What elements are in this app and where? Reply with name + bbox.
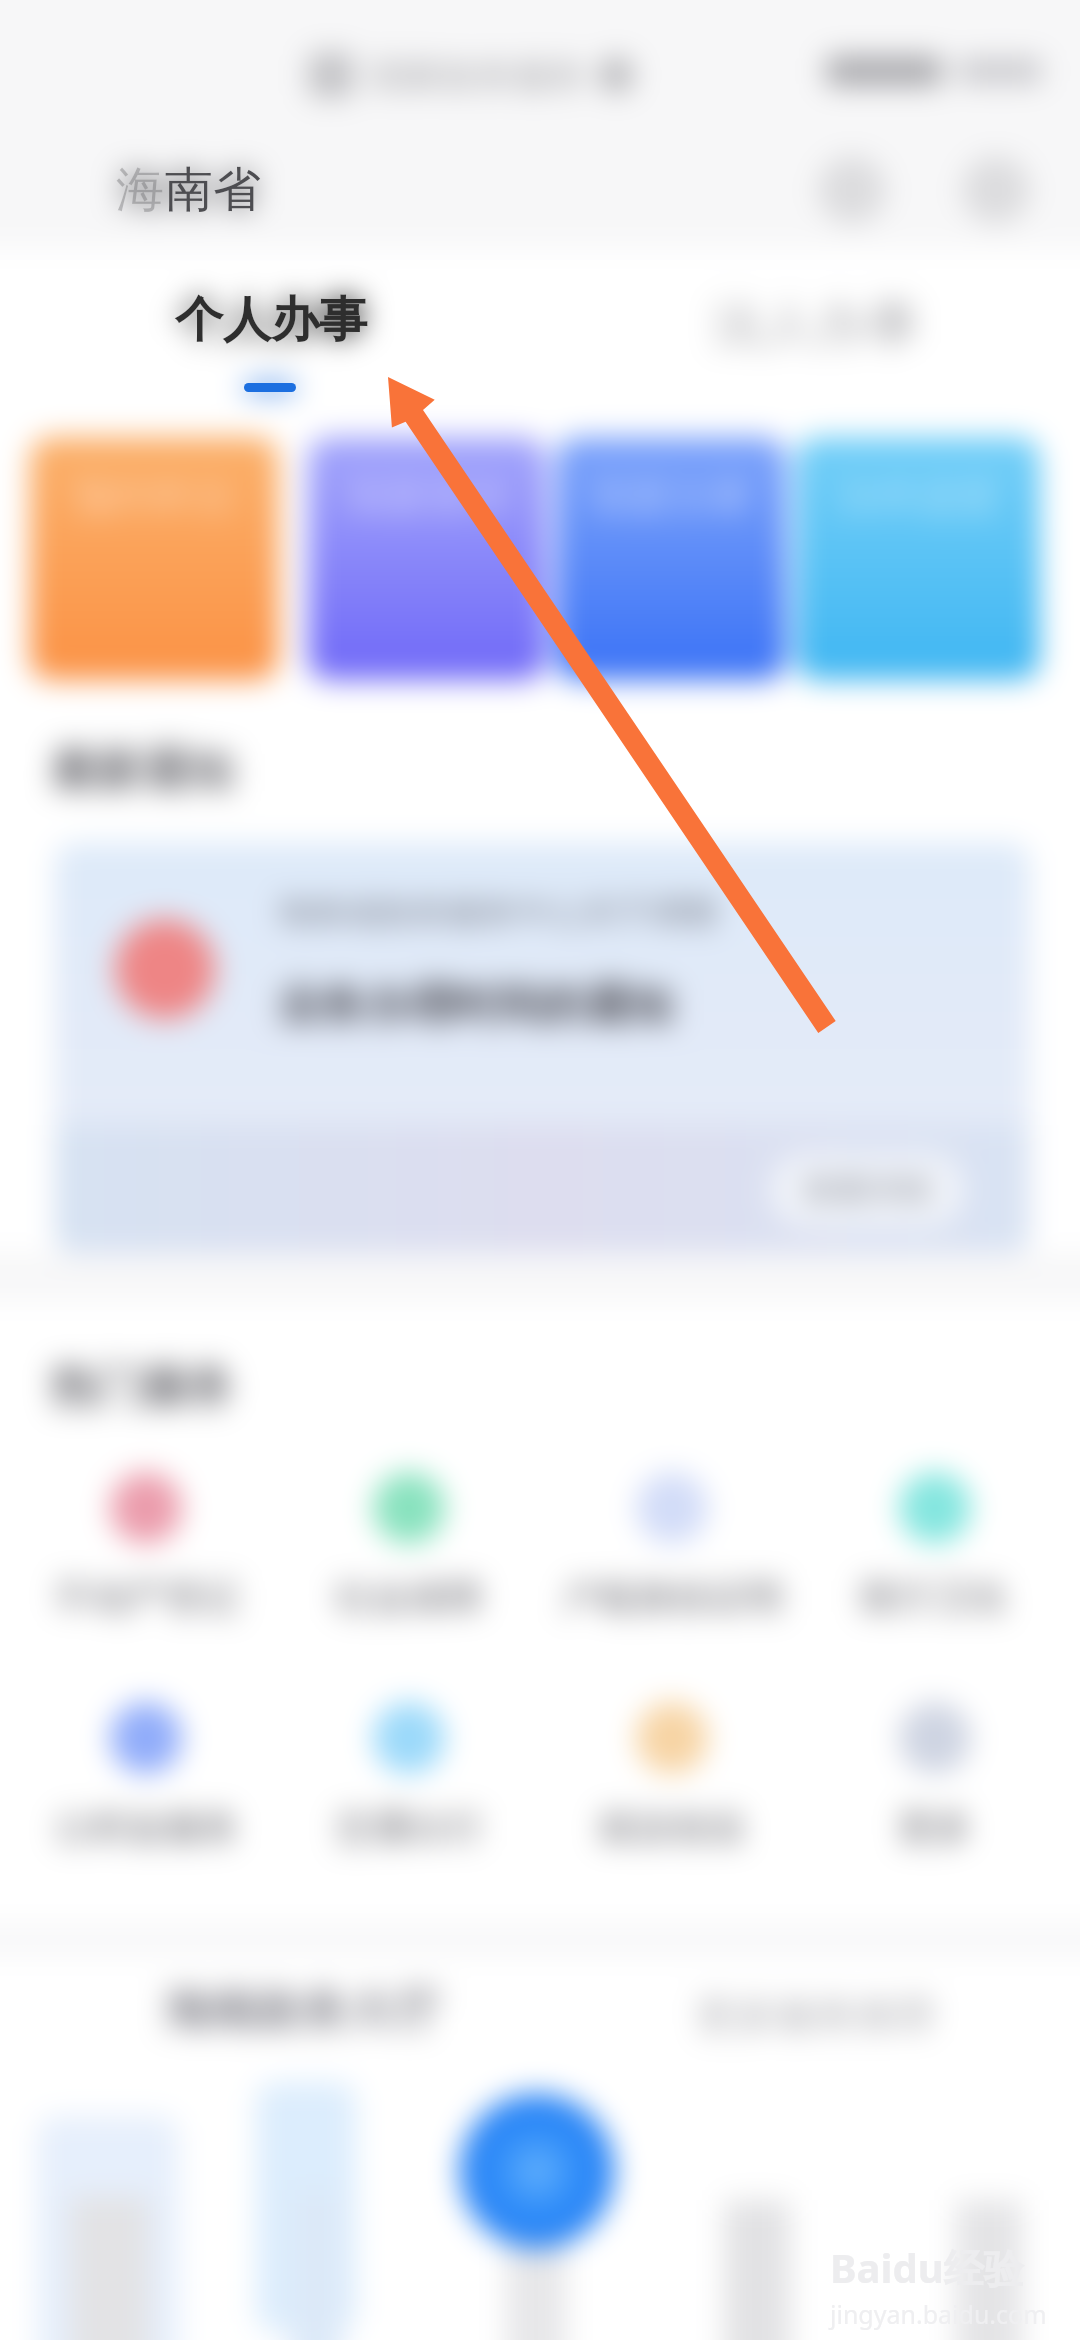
button[interactable]: 交通出行 — [279, 1702, 539, 1851]
staticText: 法人办事 — [712, 292, 920, 358]
button[interactable]: 我要办事 — [556, 437, 786, 680]
button[interactable]: 就业创业 — [542, 1702, 802, 1851]
staticText: 个人办事 — [175, 290, 367, 350]
staticText: 海南省政务服务中心关于调整 — [277, 891, 719, 934]
staticText: 我要查询 — [347, 473, 507, 523]
staticText: 社会保障 — [335, 1574, 483, 1621]
button[interactable]: 办件进度 — [796, 437, 1040, 680]
staticText: 热门服务 — [50, 1358, 234, 1416]
button[interactable]: 法人办事 — [712, 292, 920, 358]
staticText: 办件进度 — [838, 473, 998, 523]
staticText: 更多 — [898, 1804, 972, 1851]
button[interactable]: 南省 — [116, 160, 212, 220]
staticText: 交通出行 — [335, 1804, 483, 1851]
button[interactable] — [37, 2116, 179, 2340]
button[interactable]: 预约申办 — [30, 437, 278, 680]
staticText: 业务办理时间的通知 — [277, 978, 673, 1033]
staticText: 南省 — [165, 160, 261, 220]
staticText: 公积金服务 — [54, 1804, 239, 1851]
staticText: 户籍身份证明 — [561, 1574, 783, 1621]
staticText: 个人办事 — [175, 290, 367, 350]
staticText: 我要办事 — [591, 473, 751, 523]
button[interactable]: 海南省 — [116, 160, 260, 220]
staticText: 就业创业 — [598, 1804, 746, 1851]
staticText: 预约申办 — [74, 473, 234, 523]
staticText: 海南政务大厅 — [164, 1982, 440, 2040]
staticText: jingyan.baidu.com — [830, 2297, 1047, 2331]
button[interactable] — [256, 2082, 356, 2332]
staticText: 医疗卫生 — [861, 1574, 1009, 1621]
staticText: 查看详情 — [803, 1170, 931, 1210]
button[interactable]: 户籍身份证明 — [542, 1472, 802, 1621]
staticText: 国家政务服务 — [370, 53, 586, 98]
button[interactable]: 社会保障 — [279, 1472, 539, 1621]
staticText: 不动产登记 — [54, 1574, 239, 1621]
button[interactable]: Scan — [962, 156, 1030, 224]
button[interactable]: 个人办事 — [175, 290, 367, 350]
button[interactable]: 我要查询 — [308, 437, 546, 680]
staticText: 最新通知 — [50, 742, 234, 800]
button[interactable]: Search — [818, 156, 886, 224]
button[interactable]: 更多 — [805, 1702, 1065, 1851]
staticText: 海 — [116, 160, 164, 220]
button[interactable]: 医疗卫生 — [805, 1472, 1065, 1621]
staticText: 更多服务推荐 — [696, 1990, 936, 2040]
button[interactable]: 公积金服务 — [16, 1702, 276, 1851]
button[interactable]: 查看详情 — [770, 1153, 964, 1227]
button[interactable]: 个人办事 — [175, 290, 367, 350]
button[interactable]: 海南省政务服务中心关于调整 — [55, 843, 1030, 1255]
button[interactable]: 不动产登记 — [16, 1472, 276, 1621]
staticText: 海南省 — [116, 160, 260, 220]
staticText: Baidu经验 — [830, 2240, 1024, 2295]
